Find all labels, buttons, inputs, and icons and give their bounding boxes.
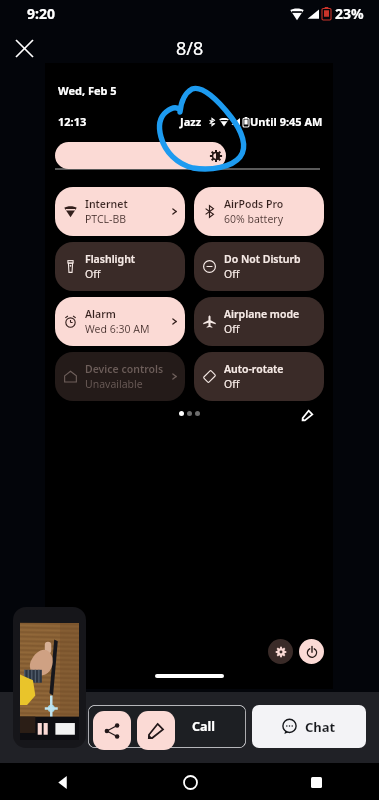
staticText: Airplane mode <box>224 307 300 321</box>
staticText: Alarm <box>85 307 116 321</box>
staticText: Wed, Feb 5 <box>58 83 117 98</box>
staticText: PTCL-BB <box>85 212 127 226</box>
staticText: Until 9:45 AM <box>250 114 323 129</box>
staticText: Off <box>224 377 240 391</box>
staticText: Call <box>192 718 215 735</box>
button[interactable]: Back <box>0 764 127 800</box>
staticText: Device controls <box>85 362 164 376</box>
button[interactable]: Internet <box>55 187 185 236</box>
staticText: Wed 6:30 AM <box>85 322 150 336</box>
staticText: Chat <box>305 718 336 736</box>
button[interactable]: Settings <box>268 639 293 664</box>
staticText: 9:20 <box>27 4 55 23</box>
staticText: Off <box>224 267 240 281</box>
button[interactable]: Chat <box>252 705 366 748</box>
button[interactable]: Auto-rotate <box>194 352 324 401</box>
button[interactable]: Call <box>88 705 246 748</box>
staticText: Do Not Disturb <box>224 252 301 266</box>
staticText: Flashlight <box>85 252 136 266</box>
staticText: 8/8 <box>176 36 204 61</box>
staticText: AirPods Pro <box>224 197 284 211</box>
staticText: Off <box>85 267 101 281</box>
button[interactable]: Home <box>127 764 253 800</box>
staticText: 12:13 <box>58 114 87 129</box>
button[interactable] <box>55 142 226 169</box>
staticText: Unavailable <box>85 377 143 391</box>
staticText: Auto-rotate <box>224 362 284 376</box>
button[interactable]: Close <box>6 30 42 66</box>
button[interactable]: Do Not Disturb <box>194 242 324 291</box>
button[interactable]: Airplane mode <box>194 297 324 346</box>
staticText: Off <box>224 322 240 336</box>
button[interactable]: Power <box>299 639 324 664</box>
button[interactable]: Share <box>93 711 131 750</box>
button[interactable]: Flashlight <box>55 242 185 291</box>
button[interactable]: Edit <box>137 711 175 750</box>
button[interactable] <box>13 607 86 748</box>
button[interactable]: Edit <box>293 401 321 429</box>
button[interactable]: AirPods Pro <box>194 187 324 236</box>
button[interactable]: Recents <box>253 764 379 800</box>
staticText: Jazz <box>180 114 202 129</box>
button[interactable]: Alarm <box>55 297 185 346</box>
button[interactable]: Device controls <box>55 352 185 401</box>
staticText: Internet <box>85 197 128 211</box>
staticText: 23% <box>335 4 364 23</box>
staticText: 60% battery <box>224 212 284 226</box>
